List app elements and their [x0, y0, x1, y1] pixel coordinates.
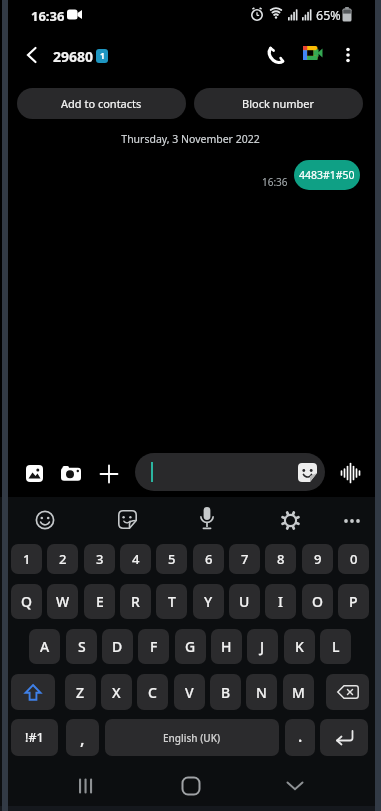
button[interactable]: [343, 518, 361, 524]
button[interactable]: 9: [302, 544, 333, 574]
button[interactable]: T: [156, 584, 187, 619]
staticText: 5: [168, 550, 176, 568]
staticText: 16:36: [262, 175, 288, 189]
button[interactable]: [280, 510, 301, 531]
button[interactable]: A: [29, 629, 60, 664]
button[interactable]: X: [101, 674, 132, 710]
staticText: 65%: [316, 7, 341, 24]
button[interactable]: [26, 465, 43, 482]
button[interactable]: [25, 47, 39, 63]
button[interactable]: [61, 466, 82, 481]
button[interactable]: O: [302, 584, 333, 619]
button[interactable]: G: [175, 629, 206, 664]
staticText: 29680: [53, 47, 94, 66]
button[interactable]: F: [138, 629, 169, 664]
staticText: 1: [100, 50, 105, 62]
staticText: M: [292, 683, 305, 702]
staticText: W: [56, 592, 70, 611]
button[interactable]: [267, 46, 285, 64]
staticText: R: [131, 592, 140, 611]
staticText: 4483#1#50: [299, 168, 355, 182]
staticText: L: [332, 637, 340, 656]
button[interactable]: K: [284, 629, 315, 664]
button[interactable]: [286, 781, 304, 791]
staticText: Z: [76, 683, 85, 702]
button[interactable]: [135, 453, 325, 491]
button[interactable]: ,: [66, 719, 99, 756]
staticText: 7: [241, 550, 249, 568]
button[interactable]: !#1: [11, 719, 58, 756]
staticText: 3: [96, 550, 104, 568]
button[interactable]: 6: [193, 544, 224, 574]
staticText: English (UK): [163, 731, 221, 745]
button[interactable]: E: [84, 584, 115, 619]
button[interactable]: C: [137, 674, 168, 710]
button[interactable]: [35, 510, 55, 530]
staticText: 4: [132, 550, 140, 568]
button[interactable]: 8: [265, 544, 296, 574]
button[interactable]: [344, 47, 352, 63]
staticText: .: [298, 725, 303, 747]
button[interactable]: 3: [84, 544, 115, 574]
button[interactable]: .: [285, 719, 315, 756]
button[interactable]: Z: [65, 674, 96, 710]
button[interactable]: 1: [11, 544, 42, 574]
button[interactable]: Y: [193, 584, 224, 619]
button[interactable]: Q: [11, 584, 42, 619]
button[interactable]: [11, 674, 55, 710]
button[interactable]: 4483#1#50: [294, 160, 360, 190]
staticText: Y: [204, 592, 213, 611]
button[interactable]: [303, 46, 323, 60]
button[interactable]: L: [320, 629, 351, 664]
button[interactable]: [100, 465, 118, 483]
staticText: 0: [350, 550, 358, 568]
button[interactable]: H: [211, 629, 242, 664]
staticText: N: [256, 683, 267, 702]
staticText: E: [96, 592, 104, 611]
button[interactable]: B: [210, 674, 241, 710]
staticText: !#1: [25, 729, 44, 746]
button[interactable]: 5: [156, 544, 187, 574]
button[interactable]: 7: [229, 544, 260, 574]
button[interactable]: 4: [120, 544, 151, 574]
button[interactable]: W: [47, 584, 78, 619]
button[interactable]: S: [66, 629, 97, 664]
button[interactable]: [320, 719, 368, 756]
staticText: Thursday, 3 November 2022: [0, 132, 381, 146]
button[interactable]: N: [246, 674, 277, 710]
button[interactable]: 0: [338, 544, 369, 574]
staticText: O: [312, 592, 323, 611]
button[interactable]: P: [338, 584, 369, 619]
button[interactable]: D: [102, 629, 133, 664]
staticText: C: [148, 683, 157, 702]
button[interactable]: [118, 510, 137, 529]
button[interactable]: [340, 463, 361, 483]
button[interactable]: V: [174, 674, 205, 710]
button[interactable]: 2: [47, 544, 78, 574]
staticText: S: [78, 637, 86, 656]
staticText: 2: [59, 550, 67, 568]
staticText: Q: [21, 592, 32, 611]
button[interactable]: R: [120, 584, 151, 619]
staticText: Add to contacts: [61, 96, 142, 111]
staticText: P: [349, 592, 358, 611]
button[interactable]: [326, 674, 369, 710]
staticText: V: [185, 683, 194, 702]
button[interactable]: U: [229, 584, 260, 619]
staticText: F: [150, 637, 158, 656]
button[interactable]: Add to contacts: [17, 88, 186, 119]
button[interactable]: Block number: [194, 88, 363, 119]
button[interactable]: English (UK): [105, 719, 279, 756]
staticText: ,: [80, 727, 85, 750]
button[interactable]: [181, 776, 201, 796]
button[interactable]: M: [283, 674, 314, 710]
button[interactable]: I: [265, 584, 296, 619]
staticText: B: [221, 683, 231, 702]
button[interactable]: [200, 507, 214, 533]
button[interactable]: J: [247, 629, 278, 664]
staticText: 1: [23, 550, 31, 568]
staticText: T: [168, 592, 176, 611]
staticText: Block number: [242, 96, 315, 111]
staticText: I: [278, 592, 283, 611]
button[interactable]: [79, 778, 94, 794]
